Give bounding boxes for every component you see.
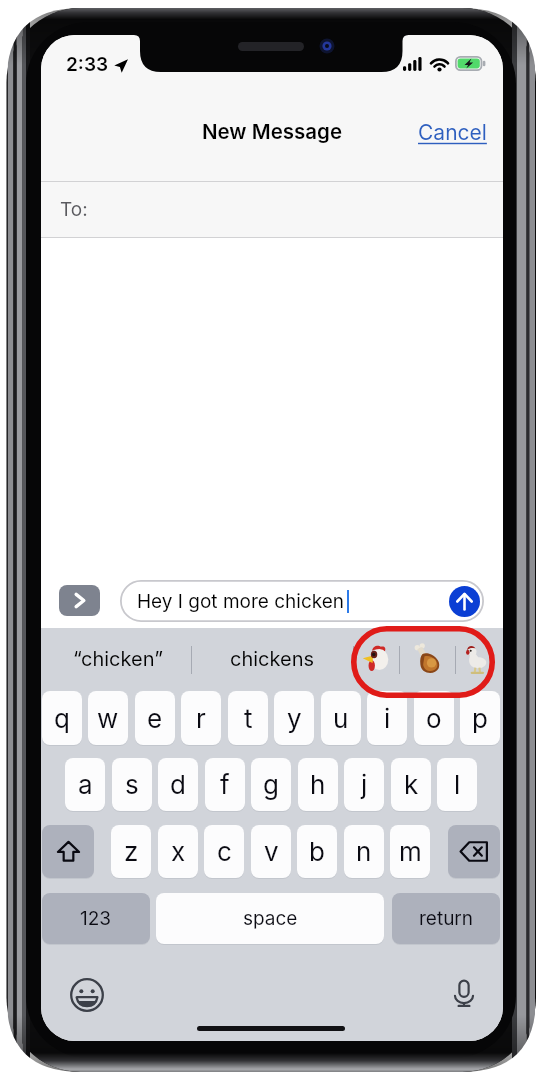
button[interactable]: chickens [191, 628, 353, 690]
staticText: e [147, 703, 163, 734]
button[interactable]: i [367, 691, 407, 745]
staticText: w [97, 703, 119, 734]
button[interactable]: a [65, 758, 105, 811]
button[interactable]: Send [449, 586, 480, 617]
staticText: Hey I got more chicken [137, 590, 345, 613]
button[interactable]: s [112, 758, 152, 811]
staticText: r [196, 703, 206, 734]
staticText: a [78, 769, 93, 800]
staticText: z [124, 836, 139, 867]
staticText: “chicken” [73, 647, 163, 671]
staticText: i [384, 703, 391, 734]
button[interactable]: 123 [42, 893, 150, 944]
staticText: q [54, 703, 70, 734]
button[interactable]: q [42, 691, 82, 745]
button[interactable]: r [181, 691, 221, 745]
staticText: c [217, 836, 232, 867]
button[interactable]: o [414, 691, 454, 745]
staticText: x [171, 836, 186, 867]
button[interactable]: Emoji suggestion [399, 628, 455, 690]
button[interactable]: Backspace [448, 825, 500, 878]
button[interactable]: Shift [42, 825, 94, 878]
staticText: s [125, 769, 139, 800]
button[interactable]: v [251, 825, 291, 878]
button[interactable]: y [274, 691, 314, 745]
staticText: u [333, 703, 349, 734]
button[interactable]: z [111, 825, 151, 878]
button[interactable]: Cancel [412, 114, 492, 150]
button[interactable]: Emoji suggestion [353, 628, 399, 690]
staticText: d [170, 769, 186, 800]
staticText: t [244, 703, 253, 734]
staticText: 123 [80, 907, 112, 930]
button[interactable]: f [205, 758, 245, 811]
staticText: h [310, 769, 326, 800]
button[interactable]: Emoji suggestion [455, 628, 498, 690]
staticText: n [356, 836, 372, 867]
staticText: y [287, 703, 302, 734]
staticText: m [399, 836, 422, 867]
staticText: o [426, 703, 442, 734]
button[interactable]: b [297, 825, 337, 878]
staticText: p [472, 703, 488, 734]
button[interactable]: Dictation [446, 975, 482, 1011]
staticText: space [243, 907, 298, 930]
button[interactable]: j [344, 758, 384, 811]
button[interactable]: u [321, 691, 361, 745]
button[interactable]: return [392, 893, 500, 944]
staticText: return [419, 907, 474, 930]
staticText: l [454, 769, 461, 800]
button[interactable]: g [251, 758, 291, 811]
button[interactable]: c [204, 825, 244, 878]
staticText: g [263, 769, 279, 800]
button[interactable]: Hey I got more chicken [120, 580, 484, 622]
button[interactable]: e [135, 691, 175, 745]
button[interactable]: t [228, 691, 268, 745]
button[interactable]: k [391, 758, 431, 811]
staticText: j [361, 769, 368, 800]
staticText: chickens [230, 647, 315, 671]
staticText: New Message [41, 119, 503, 144]
button[interactable]: “chicken” [44, 628, 191, 690]
staticText: b [309, 836, 325, 867]
staticText: f [220, 769, 230, 800]
button[interactable]: To: [41, 182, 503, 237]
button[interactable]: space [156, 893, 384, 944]
staticText: k [404, 769, 419, 800]
button[interactable]: Show more apps [59, 585, 100, 616]
button[interactable]: n [344, 825, 384, 878]
button[interactable]: h [298, 758, 338, 811]
staticText: 2:33 [66, 53, 109, 76]
button[interactable]: Emoji keyboard [69, 977, 105, 1013]
button[interactable]: x [158, 825, 198, 878]
staticText: To: [60, 198, 88, 221]
button[interactable]: w [88, 691, 128, 745]
staticText: v [264, 836, 279, 867]
staticText: Cancel [418, 120, 487, 145]
button[interactable]: m [390, 825, 430, 878]
button[interactable]: d [158, 758, 198, 811]
button[interactable]: p [460, 691, 500, 745]
button[interactable]: l [437, 758, 477, 811]
